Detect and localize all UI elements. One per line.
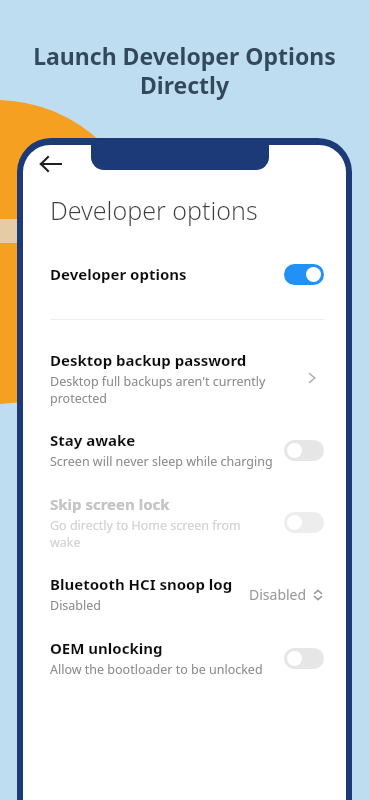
- button[interactable]: OEM unlocking: [23, 638, 346, 678]
- button[interactable]: Developer options: [23, 253, 346, 295]
- staticText: Stay awake: [50, 430, 136, 450]
- staticText: Go directly to Home screen from wake: [50, 517, 274, 550]
- button[interactable]: Back: [31, 145, 71, 183]
- staticText: Disabled: [50, 597, 102, 614]
- button[interactable]: Toggle: [284, 264, 324, 285]
- button[interactable]: Disabled: [249, 585, 324, 604]
- staticText: Disabled: [249, 585, 307, 604]
- button[interactable]: Toggle: [284, 440, 324, 461]
- staticText: OEM unlocking: [50, 638, 163, 658]
- staticText: Desktop full backups aren't currently pr…: [50, 373, 266, 406]
- button[interactable]: Stay awake: [23, 430, 346, 470]
- staticText: Allow the bootloader to be unlocked: [50, 661, 263, 678]
- staticText: Skip screen lock: [50, 494, 170, 514]
- button[interactable]: Bluetooth HCI snoop log: [23, 574, 346, 614]
- button[interactable]: Desktop backup password: [23, 350, 346, 406]
- button[interactable]: Open: [300, 366, 324, 390]
- button[interactable]: Toggle: [284, 512, 324, 533]
- staticText: Screen will never sleep while charging: [50, 453, 273, 470]
- button[interactable]: Skip screen lock: [23, 494, 346, 550]
- staticText: Launch Developer Options Directly: [14, 40, 355, 101]
- staticText: Desktop backup password: [50, 350, 247, 370]
- staticText: Bluetooth HCI snoop log: [50, 574, 233, 594]
- staticText: Developer options: [50, 264, 187, 284]
- staticText: Developer options: [50, 193, 258, 227]
- button[interactable]: Toggle: [284, 648, 324, 669]
